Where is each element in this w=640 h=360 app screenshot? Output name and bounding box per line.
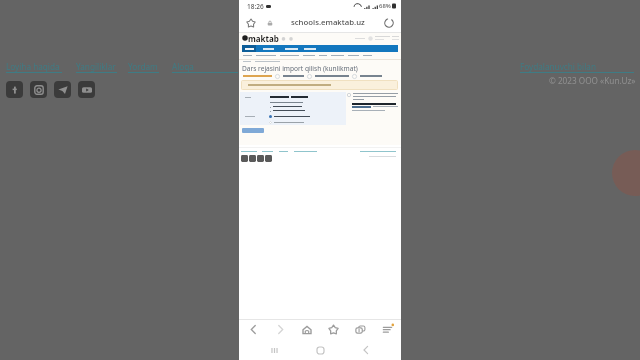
button[interactable]: Yordam (128, 61, 159, 73)
button[interactable] (242, 45, 256, 52)
button[interactable]: Tabs (348, 319, 372, 340)
button[interactable]: Yangiliklar (76, 61, 117, 73)
button[interactable]: Social link (265, 155, 272, 162)
button[interactable]: Foydalanuvchi bilan shartnoma (520, 61, 634, 73)
button[interactable] (261, 45, 275, 52)
button[interactable]: Bookmark (244, 16, 258, 30)
staticText: Aloqa ma'lumotlari (172, 61, 238, 72)
button[interactable] (269, 115, 310, 118)
button[interactable]: Aloqa ma'lumotlari (172, 61, 238, 73)
button[interactable] (269, 121, 304, 124)
button[interactable]: Reload page (382, 16, 396, 30)
button[interactable]: Social link (241, 155, 248, 162)
staticText: 18:26 (247, 2, 264, 11)
button[interactable]: Loyiha haqida (6, 61, 62, 73)
staticText: Yordam (128, 61, 158, 72)
staticText: schools.emaktab.uz (291, 17, 365, 28)
button[interactable] (283, 45, 299, 52)
staticText: Loyiha haqida (6, 61, 60, 72)
button[interactable]: Site information (264, 17, 275, 28)
button[interactable]: Home (295, 319, 319, 340)
button[interactable]: Menu (375, 319, 399, 340)
button[interactable]: Back (355, 340, 377, 360)
staticText: © 2023 OOO «Kun.Uz» (549, 75, 636, 86)
button[interactable]: Home (309, 340, 331, 360)
button[interactable]: Social link (249, 155, 256, 162)
button[interactable]: Forward (268, 319, 292, 340)
staticText: Dars rejasini import qilish (kunlikmat) (242, 64, 358, 73)
button[interactable]: Instagram (30, 81, 47, 98)
staticText: maktab (248, 33, 279, 43)
staticText: 68% (379, 2, 391, 10)
button[interactable]: Recent apps (263, 340, 285, 360)
button[interactable]: YouTube (78, 81, 95, 98)
button[interactable] (242, 128, 264, 133)
button[interactable]: Social link (257, 155, 264, 162)
staticText: Foydalanuvchi bilan shartnoma (520, 61, 634, 72)
button[interactable]: Facebook (6, 81, 23, 98)
staticText: Yangiliklar (76, 61, 116, 72)
button[interactable]: Telegram (54, 81, 71, 98)
button[interactable] (303, 45, 317, 52)
button[interactable]: Bookmarks (321, 319, 345, 340)
button[interactable]: Back (241, 319, 265, 340)
